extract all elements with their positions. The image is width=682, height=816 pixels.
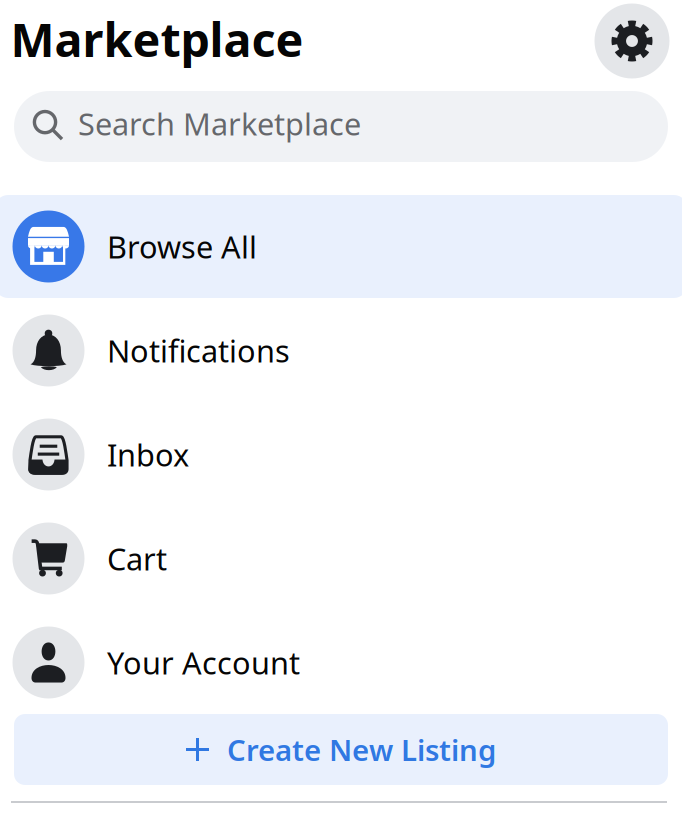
button[interactable]: Settings <box>594 3 669 78</box>
staticText: Browse All <box>107 226 257 267</box>
staticText: Create New Listing <box>227 730 496 769</box>
button[interactable]: Inbox <box>0 402 682 506</box>
button[interactable]: Notifications <box>0 298 682 402</box>
button[interactable]: Search Marketplace <box>14 91 668 162</box>
button[interactable]: Browse All <box>0 194 682 298</box>
staticText: Notifications <box>107 330 290 371</box>
button[interactable]: Cart <box>0 506 682 610</box>
staticText: Inbox <box>107 434 189 475</box>
staticText: Cart <box>107 538 167 579</box>
button[interactable]: Create New Listing <box>14 714 668 785</box>
staticText: Search Marketplace <box>78 103 361 144</box>
staticText: Marketplace <box>10 8 303 70</box>
staticText: Your Account <box>107 642 300 683</box>
button[interactable]: Your Account <box>0 610 682 714</box>
